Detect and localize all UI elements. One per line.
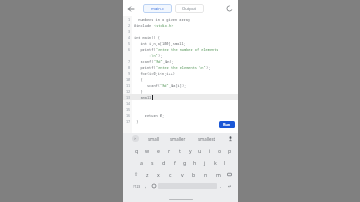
staticText: );	[206, 65, 211, 70]
button[interactable]: m	[212, 168, 224, 180]
staticText: "%d"	[154, 59, 163, 64]
button[interactable]: i	[205, 144, 215, 156]
staticText: m	[216, 171, 221, 178]
staticText: x	[157, 171, 160, 178]
button[interactable]: ,	[142, 180, 150, 192]
staticText: c	[169, 171, 172, 178]
staticText: printf(	[134, 65, 156, 70]
button[interactable]: g	[180, 156, 190, 168]
staticText: n	[204, 171, 208, 178]
staticText: q	[135, 147, 139, 154]
button[interactable]: c	[164, 168, 176, 180]
staticText: }	[134, 89, 143, 94]
button[interactable]: x	[153, 168, 164, 180]
staticText: 1	[128, 17, 131, 22]
staticText: Output	[182, 6, 197, 12]
button[interactable]: Back	[125, 3, 136, 14]
button[interactable]: v	[176, 168, 188, 180]
staticText: 2	[128, 23, 131, 28]
staticText: h	[193, 159, 197, 166]
staticText: ,&n);	[163, 59, 174, 64]
staticText: j	[204, 159, 206, 166]
staticText: <stdio.h>	[154, 23, 174, 28]
staticText: >	[134, 136, 137, 141]
staticText: d	[162, 159, 166, 166]
staticText: small	[134, 95, 152, 100]
button[interactable]: Shift	[131, 168, 142, 180]
button[interactable]: Backspace	[224, 168, 235, 180]
button[interactable]: o	[215, 144, 225, 156]
button[interactable]: .	[217, 180, 225, 192]
button[interactable]: d	[158, 156, 169, 168]
button[interactable]: b	[188, 168, 200, 180]
button[interactable]: a	[136, 156, 147, 168]
staticText: 4	[128, 35, 131, 40]
button[interactable]: w	[142, 144, 153, 156]
button[interactable]: Enter	[225, 180, 235, 192]
button[interactable]: Output	[175, 4, 204, 13]
staticText: p	[228, 147, 232, 154]
button[interactable]: q	[131, 144, 142, 156]
staticText: {	[134, 77, 143, 82]
staticText: o	[218, 147, 222, 154]
button[interactable]: l	[220, 156, 230, 168]
button[interactable]: More suggestions	[132, 135, 139, 142]
staticText: 12	[126, 89, 131, 94]
button[interactable]: e	[153, 144, 164, 156]
staticText: scanf(	[134, 59, 154, 64]
button[interactable]: k	[210, 156, 220, 168]
button[interactable]: smallest	[196, 136, 218, 142]
button[interactable]: small	[146, 136, 161, 142]
staticText: a	[140, 159, 143, 166]
button[interactable]: r	[164, 144, 175, 156]
staticText: s	[151, 159, 154, 166]
staticText: "enter the elements \n"	[156, 65, 206, 70]
staticText: for(i=0;i<n;i++)	[134, 71, 175, 76]
staticText: i	[209, 147, 211, 154]
button[interactable]: Toggle theme	[224, 3, 235, 14]
staticText: 16	[126, 113, 131, 118]
staticText: ⇧	[134, 171, 139, 177]
staticText: ,	[145, 183, 147, 189]
staticText: main.c	[151, 6, 165, 12]
staticText: 7	[128, 59, 131, 64]
staticText: 14	[126, 101, 131, 106]
staticText: t	[179, 147, 181, 154]
button[interactable]: Emoji	[150, 180, 158, 192]
staticText: int main() {	[134, 35, 160, 40]
staticText: r	[168, 147, 171, 154]
staticText: y	[189, 147, 192, 154]
staticText: ↵	[228, 184, 232, 189]
button[interactable]: smaller	[168, 136, 188, 142]
button[interactable]: Voice input	[226, 134, 235, 143]
button[interactable]: y	[185, 144, 195, 156]
button[interactable]: z	[142, 168, 153, 180]
button[interactable]: n	[200, 168, 212, 180]
button[interactable]: p	[225, 144, 235, 156]
staticText: int i,n,a[100],small;	[134, 41, 186, 46]
button[interactable]: h	[190, 156, 200, 168]
button[interactable]: f	[169, 156, 180, 168]
staticText: ,&a[i]);	[169, 83, 187, 88]
button[interactable]: Run	[219, 121, 235, 128]
staticText: 11	[126, 83, 131, 88]
staticText: "enter the number of elements	[156, 47, 219, 52]
staticText: }	[134, 119, 139, 124]
staticText: 10	[126, 77, 131, 82]
staticText: 6	[128, 47, 131, 52]
button[interactable]: t	[175, 144, 185, 156]
button[interactable]: j	[200, 156, 210, 168]
staticText: e	[157, 147, 160, 154]
staticText: return 0;	[134, 113, 165, 118]
button[interactable]: u	[195, 144, 205, 156]
button[interactable]: ?123	[131, 180, 142, 192]
staticText: w	[145, 147, 150, 154]
staticText: );	[158, 53, 163, 58]
staticText: printf(	[134, 47, 156, 52]
staticText: 8	[128, 65, 131, 70]
button[interactable]: main.c	[143, 4, 172, 13]
staticText: 13	[126, 95, 131, 100]
button[interactable]: s	[147, 156, 158, 168]
staticText: 15	[126, 107, 131, 112]
